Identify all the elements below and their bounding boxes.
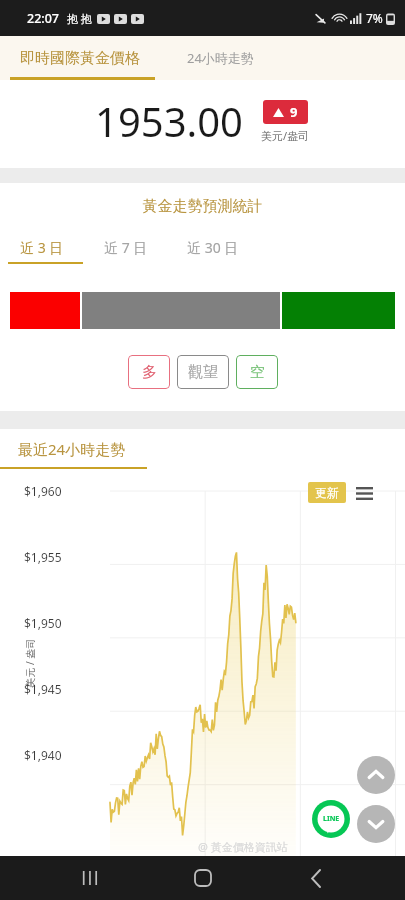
- staticText: 最近24小時走勢: [18, 439, 126, 459]
- button[interactable]: 觀望: [177, 355, 229, 389]
- staticText: $1,950: [24, 615, 62, 631]
- button[interactable]: 更新: [315, 485, 339, 500]
- button[interactable]: Recent apps: [65, 856, 113, 900]
- staticText: 7%: [366, 10, 383, 26]
- button[interactable]: Scroll up: [357, 756, 395, 794]
- button[interactable]: 24小時走勢: [160, 36, 280, 80]
- staticText: 24小時走勢: [187, 49, 254, 67]
- staticText: 黃金走勢預測統計: [0, 197, 405, 216]
- staticText: 22:07: [27, 10, 60, 27]
- staticText: @ 黃金價格資訊站: [198, 839, 288, 854]
- staticText: 近 30 日: [187, 238, 239, 257]
- button[interactable]: 近 7 日: [83, 230, 168, 264]
- button[interactable]: Back: [292, 856, 340, 900]
- staticText: 美元/盎司: [261, 128, 310, 143]
- staticText: $1,940: [24, 747, 62, 763]
- button[interactable]: 多: [128, 355, 170, 389]
- staticText: 空: [250, 363, 265, 382]
- button[interactable]: 近 30 日: [168, 230, 258, 264]
- staticText: 9: [290, 103, 298, 121]
- staticText: 多: [142, 363, 157, 382]
- staticText: 1953.00: [95, 94, 243, 148]
- staticText: 觀望: [188, 363, 218, 382]
- staticText: LINE: [323, 814, 340, 824]
- staticText: 更新: [315, 485, 339, 500]
- staticText: 近 3 日: [20, 238, 64, 257]
- staticText: 近 7 日: [104, 238, 148, 257]
- staticText: $1,945: [24, 681, 62, 697]
- button[interactable]: 近 3 日: [0, 230, 83, 264]
- staticText: 即時國際黃金價格: [20, 49, 140, 68]
- button[interactable]: 即時國際黃金價格: [0, 36, 160, 80]
- staticText: $1,955: [24, 549, 62, 565]
- button[interactable]: Home: [179, 856, 227, 900]
- button[interactable]: Scroll down: [357, 805, 395, 843]
- staticText: 抱 抱: [67, 11, 92, 26]
- button[interactable]: Menu: [355, 484, 373, 502]
- staticText: 美元 / 盎司: [22, 638, 36, 687]
- staticText: $1,960: [24, 483, 62, 499]
- button[interactable]: LINE: [312, 800, 350, 838]
- button[interactable]: 空: [236, 355, 278, 389]
